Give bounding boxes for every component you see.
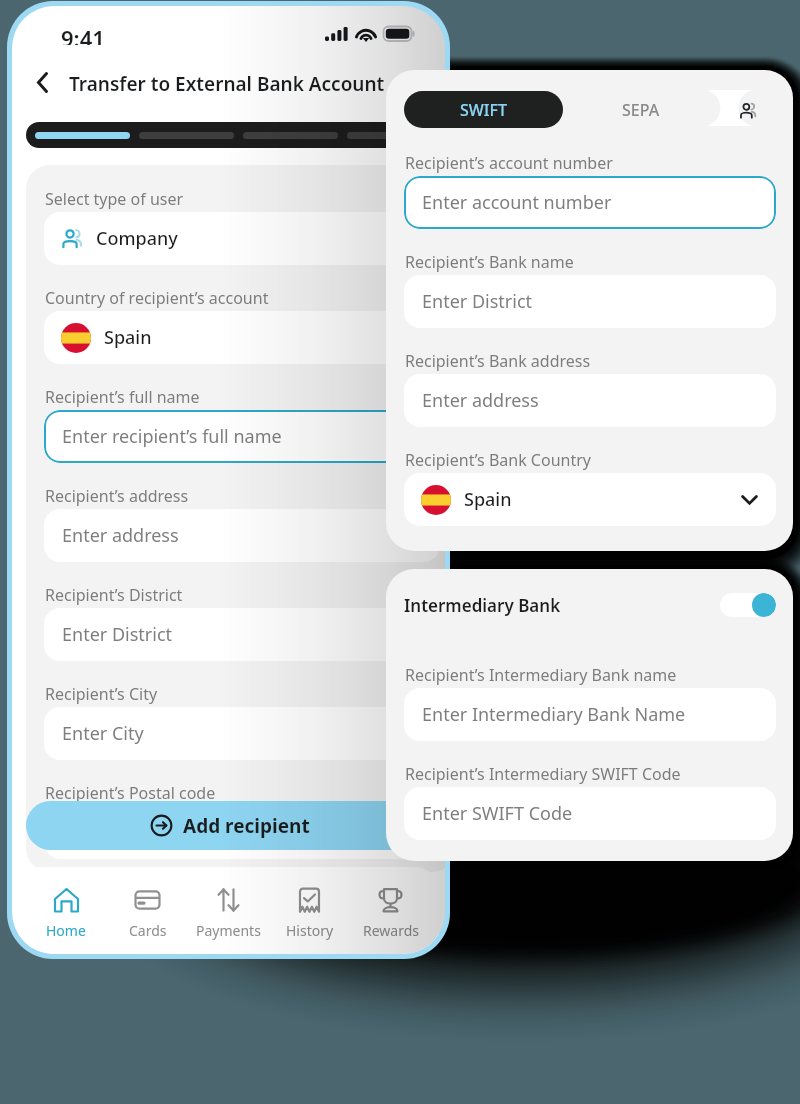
staticText: Enter SWIFT Code	[422, 801, 573, 826]
staticText: Enter recipient’s full name	[62, 424, 282, 449]
button[interactable]: Enter Postal code	[44, 806, 440, 859]
button[interactable]: Rewards	[350, 867, 431, 954]
button[interactable]: Payments	[188, 867, 269, 954]
button[interactable]: Cards	[107, 867, 188, 954]
button[interactable]: Enter Intermediary Bank Name	[404, 688, 776, 741]
staticText: Home	[46, 921, 86, 940]
staticText: History	[286, 921, 334, 940]
button[interactable]: Enter account number	[404, 176, 776, 229]
button[interactable]: Enter SWIFT Code	[404, 787, 776, 840]
staticText: Enter address	[422, 388, 539, 413]
button[interactable]: Home	[25, 867, 107, 954]
staticText: Enter District	[422, 289, 533, 314]
staticText: Enter Intermediary Bank Name	[422, 702, 686, 727]
button[interactable]: Company	[44, 212, 440, 265]
staticText: Spain	[104, 325, 152, 350]
button[interactable]: SEPA	[563, 91, 719, 128]
staticText: Intermediary Bank	[404, 594, 561, 617]
staticText: Recipient’s District	[45, 584, 183, 606]
staticText: Recipient’s Intermediary Bank name	[405, 664, 677, 686]
staticText: Recipient’s Bank Country	[405, 449, 591, 471]
button[interactable]: Enter address	[404, 374, 776, 427]
button[interactable]: SWIFT	[404, 91, 563, 128]
button[interactable]: Spain	[44, 311, 440, 364]
staticText: Spain	[464, 487, 512, 512]
staticText: Recipient’s Bank address	[405, 350, 591, 372]
button[interactable]: Enter City	[44, 707, 440, 760]
staticText: Enter Postal code	[62, 820, 209, 845]
staticText: Enter address	[62, 523, 179, 548]
staticText: Recipient’s address	[45, 485, 189, 507]
staticText: Company	[96, 226, 178, 251]
staticText: Rewards	[363, 921, 419, 940]
button[interactable]: Enter recipient’s full name	[44, 410, 440, 463]
button[interactable]: Enter District	[44, 608, 440, 661]
button[interactable]: Add recipient	[26, 801, 445, 850]
staticText: 9:41	[61, 23, 105, 45]
staticText: Recipient’s Intermediary SWIFT Code	[405, 763, 681, 785]
staticText: Recipient’s Postal code	[45, 782, 216, 804]
staticText: Cards	[129, 921, 167, 940]
staticText: Recipient’s City	[45, 683, 158, 705]
staticText: SWIFT	[460, 99, 507, 121]
staticText: Select type of user	[45, 188, 184, 210]
staticText: Transfer to External Bank Account	[69, 71, 385, 95]
button[interactable]: Contacts	[719, 91, 776, 128]
staticText: Enter District	[62, 622, 173, 647]
staticText: Payments	[196, 921, 261, 940]
staticText: Recipient’s full name	[45, 386, 200, 408]
staticText: SEPA	[622, 99, 660, 121]
button[interactable]: Enter District	[404, 275, 776, 328]
button[interactable]: Back	[27, 67, 57, 97]
staticText: Country of recipient’s account	[45, 287, 269, 309]
button[interactable]: History	[269, 867, 350, 954]
staticText: Recipient’s account number	[405, 152, 613, 174]
button[interactable]: Enter address	[44, 509, 440, 562]
staticText: Recipient’s Bank name	[405, 251, 574, 273]
staticText: Enter account number	[422, 190, 612, 215]
staticText: Enter City	[62, 721, 144, 746]
button[interactable]: Toggle intermediary bank	[720, 593, 776, 617]
button[interactable]: Spain	[404, 473, 776, 526]
staticText: Add recipient	[183, 813, 310, 839]
